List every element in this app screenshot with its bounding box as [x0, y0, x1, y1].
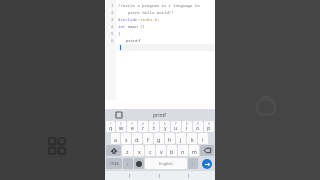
button[interactable]: .	[188, 158, 198, 169]
button[interactable]: Clipboard	[116, 112, 122, 118]
button[interactable]: 8	[182, 121, 192, 132]
button[interactable]: 7	[171, 121, 181, 132]
button[interactable]: h	[165, 133, 175, 144]
staticText: 5	[111, 31, 114, 37]
button[interactable]: k	[187, 133, 197, 144]
button[interactable]: Back	[127, 172, 134, 179]
button[interactable]: Emoji	[134, 158, 144, 169]
button[interactable]: b	[167, 145, 177, 156]
staticText: m	[192, 148, 197, 155]
button[interactable]: c	[145, 145, 155, 156]
staticText: c	[149, 148, 152, 155]
staticText: p	[207, 124, 211, 131]
staticText: 5	[153, 122, 155, 126]
staticText: i	[186, 124, 188, 131]
staticText: f	[147, 136, 149, 143]
button[interactable]: 0	[204, 121, 214, 132]
button[interactable]: English	[145, 158, 187, 169]
staticText: 3	[111, 17, 114, 23]
staticText: u	[174, 124, 178, 131]
staticText: int	[118, 24, 128, 29]
staticText: 2	[111, 10, 114, 16]
staticText: printf	[126, 38, 141, 43]
staticText: l	[202, 136, 204, 143]
staticText: print hello world!!	[128, 10, 174, 15]
staticText: w	[119, 124, 124, 131]
staticText: 6	[111, 38, 114, 44]
staticText: 3	[131, 122, 133, 126]
staticText: 7	[175, 122, 177, 126]
staticText: 9	[197, 122, 199, 126]
staticText: 1	[110, 122, 112, 126]
button[interactable]: x	[134, 145, 144, 156]
button[interactable]: g	[154, 133, 164, 144]
staticText: b	[170, 148, 174, 155]
staticText: z	[126, 148, 129, 155]
button[interactable]: 6	[160, 121, 170, 132]
staticText: 0	[208, 122, 210, 126]
button[interactable]: n	[178, 145, 188, 156]
staticText: //write a program in c language to	[118, 3, 200, 8]
button[interactable]: ,	[123, 158, 133, 169]
staticText: printf	[153, 112, 167, 119]
button[interactable]: Backspace	[200, 145, 214, 156]
staticText: s	[125, 136, 128, 143]
button[interactable]: 2	[116, 121, 126, 132]
button[interactable]: 1	[106, 121, 115, 132]
button[interactable]: 4	[138, 121, 148, 132]
button[interactable]: 3	[127, 121, 137, 132]
staticText: 8	[186, 122, 188, 126]
staticText: 4	[111, 24, 114, 30]
staticText: <stdio.h>	[138, 17, 160, 22]
button[interactable]: m	[189, 145, 199, 156]
button[interactable]: a	[111, 133, 120, 144]
button[interactable]: Lock	[252, 92, 280, 120]
staticText: e	[131, 124, 134, 131]
staticText: q	[109, 124, 113, 131]
button[interactable]: l	[198, 133, 208, 144]
staticText: ,	[127, 160, 129, 167]
staticText: 6	[164, 122, 166, 126]
staticText: x	[138, 148, 141, 155]
button[interactable]: j	[176, 133, 186, 144]
staticText: main ()	[128, 24, 145, 29]
staticText: j	[180, 136, 182, 143]
button[interactable]: Shift	[106, 145, 121, 156]
button[interactable]: Apps grid	[44, 133, 70, 159]
button[interactable]: v	[156, 145, 166, 156]
button[interactable]: d	[132, 133, 142, 144]
button[interactable]: Enter	[199, 158, 214, 169]
staticText: ?123	[110, 161, 119, 166]
staticText: r	[142, 124, 145, 131]
staticText: 4	[142, 122, 144, 126]
staticText: k	[191, 136, 194, 143]
staticText: h	[168, 136, 172, 143]
staticText: {	[118, 31, 121, 36]
staticText: n	[181, 148, 185, 155]
staticText: g	[157, 136, 161, 143]
staticText: d	[135, 136, 139, 143]
staticText: a	[114, 136, 117, 143]
staticText: English	[159, 161, 173, 166]
button[interactable]: 9	[193, 121, 203, 132]
button[interactable]: ?123	[106, 158, 122, 169]
staticText: .	[192, 160, 194, 167]
staticText: 2	[120, 122, 122, 126]
button[interactable]: printf	[149, 112, 171, 119]
staticText: o	[196, 124, 200, 131]
staticText: t	[153, 124, 155, 131]
staticText: #include	[118, 17, 138, 22]
staticText: y	[164, 124, 167, 131]
button[interactable]: z	[122, 145, 133, 156]
button[interactable]: f	[143, 133, 153, 144]
staticText: v	[160, 148, 163, 155]
button[interactable]: Home	[157, 172, 164, 179]
button[interactable]: 5	[149, 121, 159, 132]
button[interactable]: s	[121, 133, 131, 144]
staticText: 1	[111, 3, 114, 9]
button[interactable]: Recents	[186, 172, 193, 179]
